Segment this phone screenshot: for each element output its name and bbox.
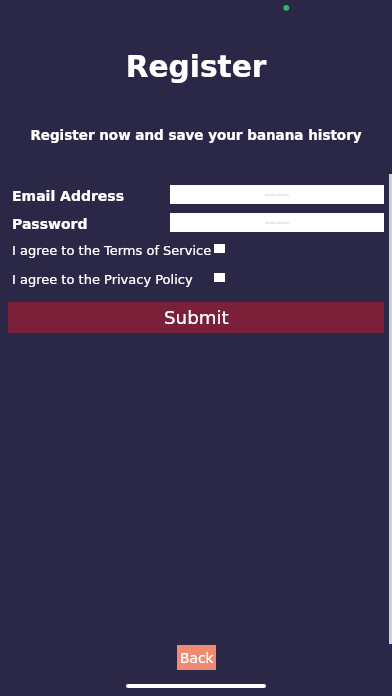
staticText: Register: [0, 50, 392, 84]
button[interactable]: Submit: [8, 302, 384, 333]
staticText: email address: [265, 221, 289, 225]
staticText: Password: [12, 216, 88, 232]
button[interactable]: Back: [177, 645, 216, 670]
staticText: I agree to the Privacy Policy: [12, 272, 193, 287]
staticText: Email Address: [12, 188, 125, 204]
staticText: email address: [265, 193, 289, 197]
staticText: Back: [180, 650, 214, 666]
staticText: I agree to the Terms of Service: [12, 243, 212, 258]
staticText: Register now and save your banana histor…: [0, 127, 392, 143]
staticText: Submit: [164, 307, 229, 328]
